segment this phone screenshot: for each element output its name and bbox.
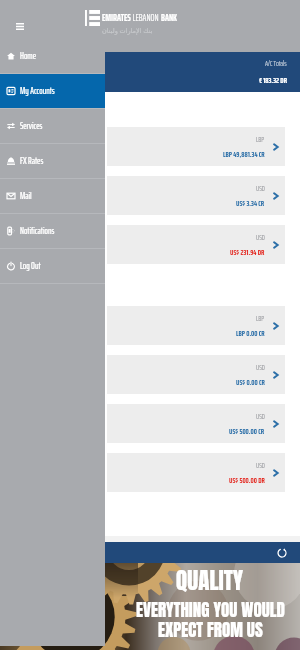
button[interactable]: Refresh	[272, 543, 291, 562]
staticText: LBP	[256, 312, 265, 324]
button[interactable]: My Accounts	[0, 74, 105, 108]
staticText: USD	[256, 231, 265, 243]
button[interactable]: FX Rates	[0, 144, 105, 178]
staticText: USD	[256, 410, 265, 422]
staticText: A/C Totals	[265, 57, 287, 69]
button[interactable]: USD	[107, 176, 285, 215]
staticText: USD	[256, 459, 265, 471]
staticText: Services	[20, 119, 43, 133]
staticText: US$ 500.00 DR	[229, 474, 265, 487]
button[interactable]: USD	[107, 355, 285, 394]
staticText: My Accounts	[20, 84, 55, 98]
button[interactable]: Home	[0, 39, 105, 73]
staticText: BANK	[161, 10, 177, 25]
staticText: USD	[256, 182, 265, 194]
staticText: Log Out	[20, 259, 41, 273]
button[interactable]: Services	[0, 109, 105, 143]
button[interactable]: USD	[107, 404, 285, 443]
staticText: US$ 3.34 CR	[236, 197, 265, 210]
staticText: Mail	[20, 189, 32, 203]
staticText: بنك الإمارات ولبنان	[102, 26, 153, 35]
staticText: EVERYTHING YOU WOULD	[136, 597, 285, 623]
button[interactable]: USD	[107, 225, 285, 264]
button[interactable]: Mail	[0, 179, 105, 213]
staticText: USD	[256, 361, 265, 373]
staticText: QUALITY	[176, 563, 244, 598]
button[interactable]: LBP	[107, 127, 285, 166]
staticText: LBP 49,881.34 CR	[223, 148, 265, 161]
staticText: LBP 0.00 CR	[236, 327, 265, 340]
staticText: EXPECT FROM US	[158, 617, 263, 643]
staticText: EMIRATES	[102, 10, 131, 25]
staticText: € 183.32 DR	[259, 74, 287, 87]
button[interactable]: QUALITY	[0, 563, 300, 650]
staticText: FX Rates	[20, 154, 44, 168]
staticText: US$ 231.94 DR	[230, 246, 265, 259]
staticText: US$ 500.00 CR	[229, 425, 265, 438]
button[interactable]: USD	[107, 453, 285, 492]
button[interactable]: LBP	[107, 306, 285, 345]
staticText: Notifications	[20, 224, 55, 238]
button[interactable]: Log Out	[0, 249, 105, 283]
button[interactable]: Notifications	[0, 214, 105, 248]
staticText: LEBANON	[131, 10, 161, 25]
button[interactable]: Open navigation menu	[9, 15, 31, 37]
staticText: LBP	[256, 133, 265, 145]
staticText: Home	[20, 49, 37, 63]
staticText: US$ 0.00 CR	[236, 376, 265, 389]
